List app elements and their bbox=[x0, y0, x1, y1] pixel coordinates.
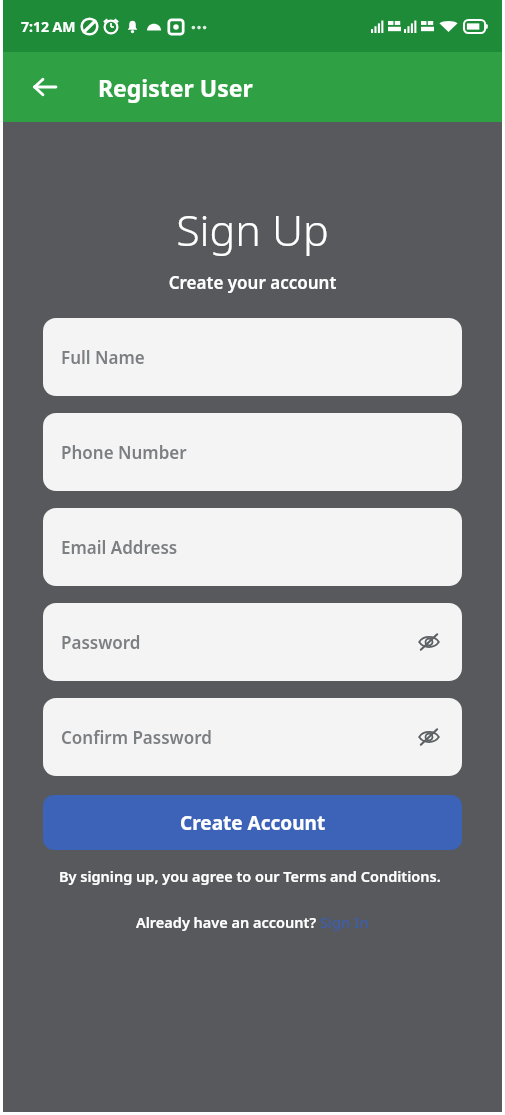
staticText: Email Address bbox=[61, 536, 444, 559]
button[interactable]: Back bbox=[23, 65, 67, 109]
button[interactable]: Password bbox=[43, 603, 462, 681]
staticText: Full Name bbox=[61, 346, 444, 369]
staticText: Register User bbox=[98, 72, 253, 103]
staticText: 7:12 AM bbox=[21, 17, 76, 36]
button[interactable]: Confirm Password bbox=[43, 698, 462, 776]
staticText: Already have an account? Sign In bbox=[136, 912, 369, 932]
button[interactable]: Phone Number bbox=[43, 413, 462, 491]
button[interactable]: Email Address bbox=[43, 508, 462, 586]
button[interactable]: Full Name bbox=[43, 318, 462, 396]
staticText: Create Account bbox=[180, 810, 326, 836]
button[interactable]: Create Account bbox=[43, 795, 462, 850]
staticText: Sign Up bbox=[3, 200, 502, 259]
button[interactable]: Already have an account? Sign In bbox=[43, 912, 462, 932]
staticText: Confirm Password bbox=[61, 726, 414, 749]
staticText: By signing up, you agree to our Terms an… bbox=[59, 866, 454, 886]
staticText: Password bbox=[61, 631, 414, 654]
staticText: Create your account bbox=[3, 271, 502, 294]
staticText: Phone Number bbox=[61, 441, 444, 464]
button[interactable]: Toggle password visibility bbox=[414, 722, 444, 752]
button[interactable]: Toggle password visibility bbox=[414, 627, 444, 657]
